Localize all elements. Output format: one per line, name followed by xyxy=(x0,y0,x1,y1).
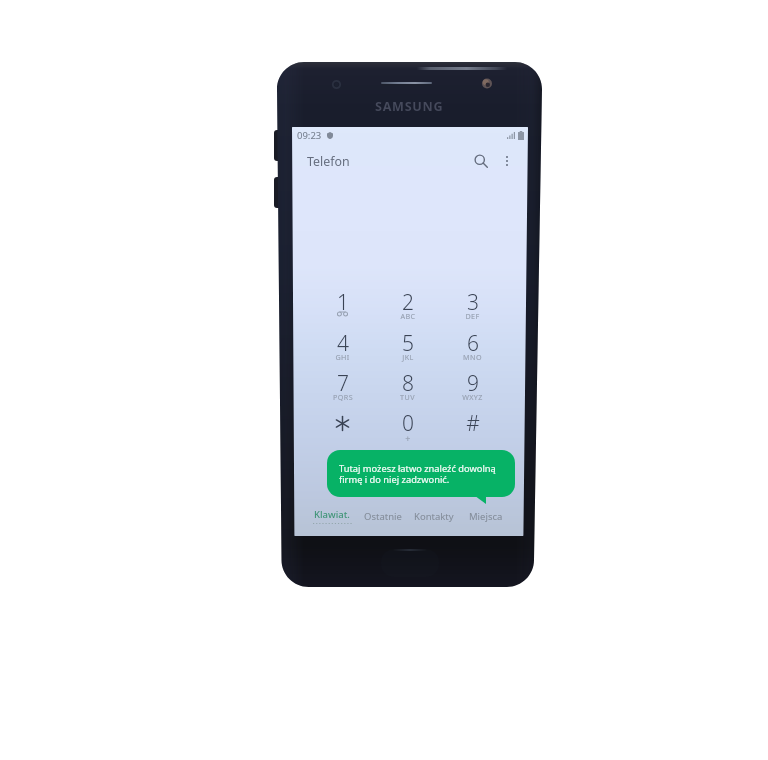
staticText: GHI xyxy=(335,352,350,362)
button[interactable]: Klawiat. xyxy=(306,504,357,528)
staticText: DEF xyxy=(465,311,480,321)
button[interactable]: 5 xyxy=(375,328,440,368)
staticText: # xyxy=(466,409,480,438)
staticText: Klawiat. xyxy=(314,508,350,521)
button[interactable]: 0 xyxy=(375,408,440,448)
staticText: 9 xyxy=(467,369,479,398)
staticText: Kontakty xyxy=(414,510,454,523)
staticText: Tutaj możesz łatwo znaleźć dowolną firmę… xyxy=(339,462,505,485)
staticText: 5 xyxy=(402,329,414,358)
button[interactable]: Search xyxy=(468,148,494,174)
button[interactable]: 4 xyxy=(310,328,375,368)
staticText: TUV xyxy=(400,392,415,402)
staticText: 4 xyxy=(337,329,349,358)
staticText: Telefon xyxy=(307,153,350,170)
staticText: JKL xyxy=(402,352,414,362)
staticText: MNO xyxy=(463,352,482,362)
staticText: 09:23 xyxy=(297,129,322,142)
button[interactable] xyxy=(310,408,375,448)
staticText: 1 xyxy=(337,288,349,317)
staticText: 6 xyxy=(467,329,479,358)
button[interactable]: 7 xyxy=(310,368,375,408)
button[interactable]: 6 xyxy=(440,328,505,368)
button[interactable]: 1 xyxy=(310,287,375,328)
staticText: SAMSUNG xyxy=(375,98,444,115)
staticText: Ostatnie xyxy=(364,510,402,523)
staticText: WXYZ xyxy=(462,392,483,402)
button[interactable]: 2 xyxy=(375,287,440,328)
staticText: 8 xyxy=(402,369,414,398)
staticText: + xyxy=(405,432,411,444)
button[interactable]: More options xyxy=(494,148,520,174)
button[interactable]: 9 xyxy=(440,368,505,408)
button[interactable]: Ostatnie xyxy=(357,504,408,528)
staticText: 3 xyxy=(467,288,479,317)
staticText: 2 xyxy=(402,288,414,317)
button[interactable]: 8 xyxy=(375,368,440,408)
staticText: Miejsca xyxy=(469,510,503,523)
button[interactable]: Miejsca xyxy=(460,504,512,528)
button[interactable]: 3 xyxy=(440,287,505,328)
staticText: 7 xyxy=(337,369,349,398)
staticText: PQRS xyxy=(333,392,353,402)
staticText: 0 xyxy=(402,409,414,438)
staticText: ABC xyxy=(400,311,416,321)
button[interactable]: Tutaj możesz łatwo znaleźć dowolną firmę… xyxy=(327,450,515,497)
button[interactable]: Kontakty xyxy=(408,504,460,528)
button[interactable]: # xyxy=(440,408,505,448)
